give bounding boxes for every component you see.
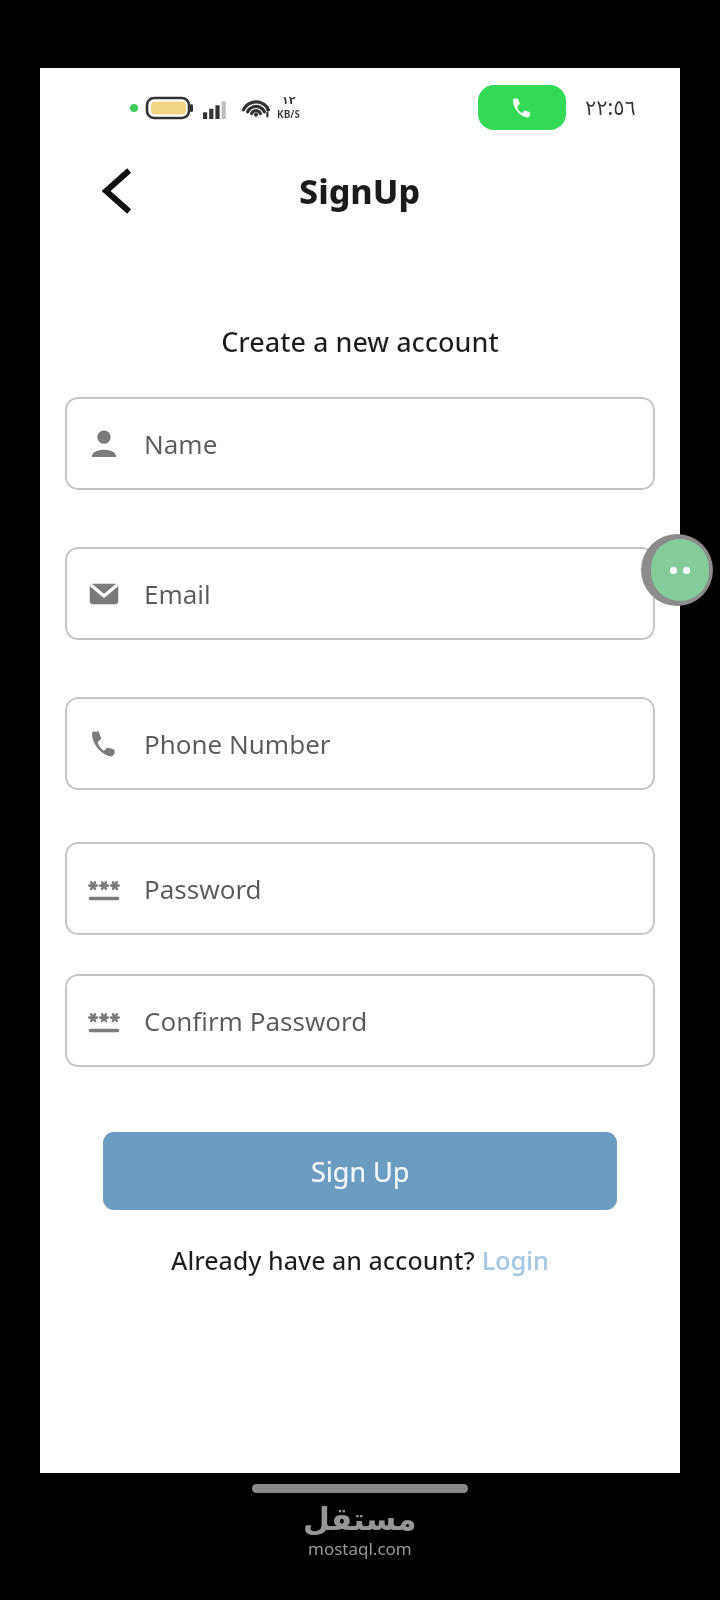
staticText: Confirm Password [144, 1003, 368, 1038]
staticText: mostaql.com [308, 1537, 412, 1560]
staticText: Name [144, 426, 218, 461]
button[interactable]: Sign Up [103, 1132, 617, 1210]
staticText: Create a new account [40, 323, 680, 360]
staticText: ٢٢:٥٦ [585, 93, 636, 122]
staticText: Email [144, 576, 211, 611]
button[interactable]: Email [65, 547, 655, 640]
staticText: مستقل [303, 1501, 417, 1537]
staticText: ١٢ [282, 94, 296, 107]
button[interactable]: Back [84, 159, 148, 223]
button[interactable]: Password [65, 842, 655, 935]
button[interactable]: Quick actions [641, 534, 713, 606]
button[interactable]: Name [65, 397, 655, 490]
staticText: Phone Number [144, 726, 331, 761]
staticText: Already have an account? [171, 1243, 482, 1277]
button[interactable]: Already have an account? [40, 1243, 680, 1277]
button[interactable]: Ongoing call [478, 85, 566, 130]
staticText: KB/S [277, 107, 300, 121]
staticText: Login [482, 1243, 549, 1277]
staticText: SignUp [299, 168, 421, 214]
staticText: Sign Up [311, 1153, 410, 1190]
button[interactable]: Confirm Password [65, 974, 655, 1067]
button[interactable]: Phone Number [65, 697, 655, 790]
staticText: Password [144, 871, 262, 906]
